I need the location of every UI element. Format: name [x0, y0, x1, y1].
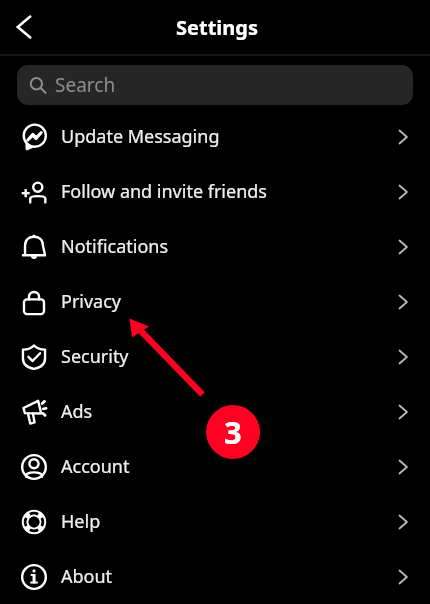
button[interactable]: Follow and invite friends — [0, 164, 430, 219]
staticText: Notifications — [61, 234, 169, 259]
staticText: Ads — [61, 399, 93, 424]
staticText: Search — [55, 72, 116, 98]
staticText: 3 — [224, 411, 242, 453]
staticText: Follow and invite friends — [61, 179, 267, 204]
button[interactable]: Update Messaging — [0, 109, 430, 164]
button[interactable]: Search — [17, 65, 413, 105]
staticText: Help — [61, 509, 101, 534]
button[interactable]: Notifications — [0, 219, 430, 274]
staticText: Privacy — [61, 289, 122, 314]
button[interactable]: About — [0, 549, 430, 604]
button[interactable]: Help — [0, 494, 430, 549]
button[interactable]: Privacy — [0, 274, 430, 329]
button[interactable]: Ads — [0, 384, 430, 439]
button[interactable]: Security — [0, 329, 430, 384]
staticText: Settings — [176, 14, 258, 41]
staticText: Security — [61, 344, 129, 369]
staticText: Update Messaging — [61, 124, 220, 149]
staticText: Account — [61, 454, 130, 479]
staticText: About — [61, 564, 113, 589]
button[interactable]: Back — [2, 5, 46, 49]
button[interactable]: Step 3 — [206, 405, 260, 459]
button[interactable]: Account — [0, 439, 430, 494]
